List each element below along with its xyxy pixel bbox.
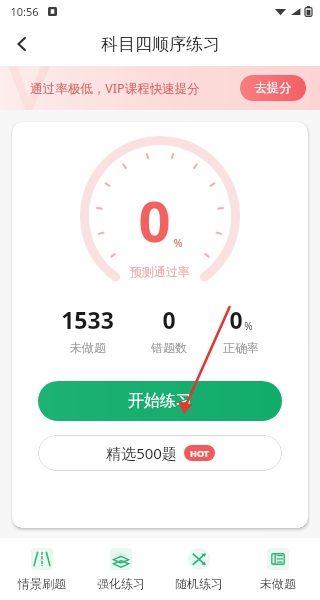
staticText: %	[244, 319, 253, 333]
staticText: 去提分	[254, 80, 292, 96]
staticText: 精选500题	[106, 443, 177, 463]
staticText: 错题数	[151, 340, 187, 355]
staticText: 开始练习	[128, 391, 192, 411]
button[interactable]: 去提分	[240, 75, 306, 101]
button[interactable]: 情景刷题	[5, 542, 79, 597]
other: 未做题	[267, 548, 289, 570]
staticText: 情景刷题	[18, 576, 66, 591]
button[interactable]: Back	[0, 22, 44, 66]
staticText: 1533	[61, 304, 114, 335]
staticText: 10:56	[10, 4, 39, 19]
staticText: HOT	[190, 447, 209, 459]
button[interactable]: 未做题	[241, 542, 315, 597]
staticText: 未做题	[260, 576, 296, 591]
staticText: 随机练习	[175, 576, 223, 591]
staticText: 0	[162, 304, 176, 335]
staticText: %	[173, 235, 183, 250]
staticText: 强化练习	[97, 576, 145, 591]
button[interactable]: 开始练习	[38, 381, 282, 421]
button[interactable]: 强化练习	[84, 542, 158, 597]
staticText: 科目四顺序练习	[101, 34, 220, 55]
staticText: 未做题	[70, 340, 106, 355]
other: 情景刷题	[31, 548, 53, 570]
button[interactable]: 精选500题	[38, 435, 282, 471]
other: 强化练习	[110, 548, 132, 570]
other: 随机练习	[188, 548, 210, 570]
staticText: 通过率极低，VIP课程快速提分	[30, 80, 200, 97]
staticText: 0	[138, 182, 171, 258]
staticText: 预测通过率	[130, 264, 190, 279]
button[interactable]: 通过率极低，VIP课程快速提分	[0, 66, 320, 110]
staticText: 0	[229, 304, 243, 335]
staticText: 正确率	[223, 340, 259, 355]
button[interactable]: 随机练习	[162, 542, 236, 597]
